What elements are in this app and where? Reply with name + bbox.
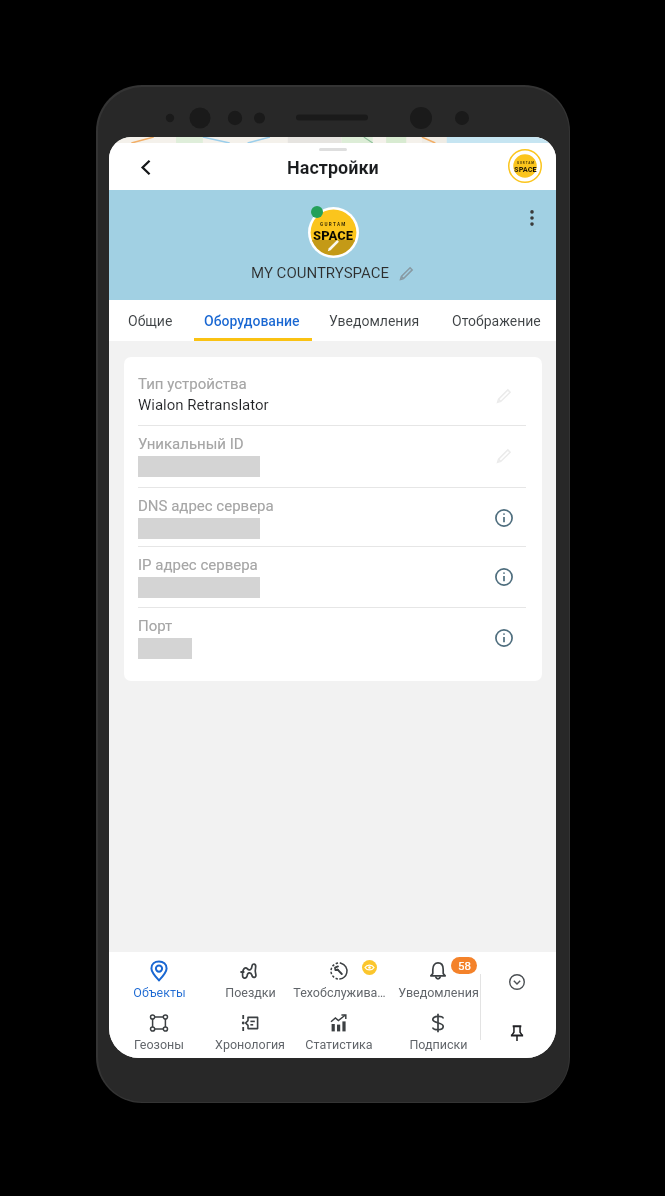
button[interactable]: Статистика [287,1004,391,1056]
button[interactable]: Back [131,152,161,182]
button[interactable]: Хронология [198,1004,302,1056]
button[interactable]: Collapse panel [499,964,535,1000]
staticText: Настройки [287,157,379,178]
staticText: Подписки [409,1037,468,1052]
button[interactable]: DNS адрес сервера [138,488,532,546]
staticText: Уникальный ID [138,435,244,453]
button[interactable]: Pin panel [499,1015,535,1051]
button[interactable]: Техобслужива… [287,952,391,1004]
staticText: MY COUNTRYSPACE [251,264,390,282]
button[interactable]: Объекты [109,952,211,1004]
staticText: GURTAM [517,161,535,165]
staticText: 58 [458,959,471,972]
button[interactable]: Порт [138,608,532,681]
button[interactable]: IP адрес сервера [138,547,532,607]
button[interactable]: Подписки [386,1004,490,1056]
staticText: SPACE [313,228,354,243]
staticText: Общие [128,313,173,329]
button[interactable]: More options [517,203,547,233]
staticText: Оборудование [204,313,300,329]
button[interactable]: Поездки [198,952,302,1004]
staticText: SPACE [514,165,537,174]
button[interactable]: Геозоны [109,1004,211,1056]
staticText: Поездки [225,985,276,1000]
staticText: Уведомления [398,985,479,1000]
button[interactable]: Тип устройства [138,357,532,425]
button[interactable]: Account [506,147,544,185]
staticText: Техобслужива… [293,985,386,1000]
button[interactable]: Уникальный ID [138,426,532,487]
staticText: IP адрес сервера [138,556,258,574]
staticText: Порт [138,617,173,635]
staticText: Wialon Retranslator [138,396,269,414]
button[interactable]: Отображение [440,300,552,341]
staticText: Геозоны [134,1037,184,1052]
staticText: GURTAM [320,222,347,227]
staticText: Уведомления [329,313,420,329]
button[interactable]: Общие [109,300,206,341]
staticText: Объекты [133,985,186,1000]
button[interactable]: Уведомления [318,300,430,341]
staticText: Отображение [452,313,541,329]
staticText: DNS адрес сервера [138,497,274,515]
button[interactable]: 58 [386,952,490,1004]
staticText: Статистика [305,1037,373,1052]
button[interactable]: Оборудование [196,300,308,341]
staticText: Хронология [215,1037,285,1052]
staticText: Тип устройства [138,375,247,393]
